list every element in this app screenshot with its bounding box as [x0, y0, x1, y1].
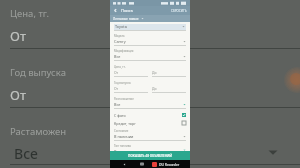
staticText: Кредит, торг — [114, 121, 136, 126]
staticText: Все — [114, 149, 121, 151]
button[interactable]: Тип топлива — [114, 144, 186, 151]
staticText: От — [10, 27, 26, 45]
button[interactable]: Легковые новые — [110, 15, 190, 22]
staticText: До — [152, 70, 157, 75]
button[interactable]: Back — [110, 6, 190, 15]
staticText: Тип топлива — [114, 144, 131, 148]
button[interactable]: От — [114, 86, 148, 93]
button[interactable]: Модификация — [114, 49, 186, 61]
button[interactable]: До — [152, 70, 186, 77]
staticText: Расположение — [114, 97, 134, 101]
staticText: СБРОСИТЬ — [171, 9, 187, 13]
staticText: Растаможен — [10, 125, 67, 138]
staticText: Цена, тг. — [10, 7, 50, 20]
staticText: От — [114, 86, 119, 91]
staticText: Легковые новые — [113, 17, 139, 21]
button[interactable]: Все — [14, 144, 38, 163]
button[interactable]: DU Recorder — [152, 162, 157, 167]
button[interactable]: Back — [122, 162, 127, 167]
button[interactable]: С фото — [114, 112, 186, 118]
staticText: От — [114, 70, 119, 75]
button[interactable]: Dropdown — [265, 146, 281, 158]
staticText: Год выпуска — [114, 81, 131, 85]
button[interactable]: До — [152, 86, 186, 93]
staticText: Год выпуска — [10, 66, 66, 79]
button[interactable]: Back — [113, 8, 118, 13]
staticText: В наличии — [114, 134, 134, 139]
staticText: DU Recorder — [159, 162, 180, 167]
button[interactable]: От — [114, 70, 148, 77]
button[interactable]: Кредит, торг — [114, 120, 186, 126]
button[interactable]: Состояние — [114, 129, 186, 141]
button[interactable]: СБРОСИТЬ — [171, 9, 187, 13]
button[interactable]: Home — [140, 162, 144, 166]
staticText: Поиск — [121, 8, 133, 13]
staticText: Модификация — [114, 49, 134, 53]
button[interactable]: Toyota — [114, 24, 186, 31]
staticText: Состояние — [114, 129, 129, 133]
button[interactable]: Расположение — [114, 97, 186, 109]
staticText: Все — [114, 102, 121, 107]
staticText: Модель — [114, 34, 125, 38]
staticText: С фото — [114, 113, 126, 118]
staticText: Все — [114, 54, 121, 59]
staticText: До — [152, 86, 157, 91]
button[interactable]: ПОКАЗАТЬ 48 ОБЪЯВЛЕНИЙ — [110, 151, 190, 160]
staticText: Цена, тг. — [114, 65, 126, 69]
button[interactable]: Модель — [114, 34, 186, 46]
staticText: Camry — [114, 39, 126, 44]
staticText: Все — [14, 144, 38, 163]
staticText: От — [10, 86, 26, 104]
staticText: Toyota — [115, 24, 127, 29]
staticText: ПОКАЗАТЬ 48 ОБЪЯВЛЕНИЙ — [128, 154, 172, 158]
